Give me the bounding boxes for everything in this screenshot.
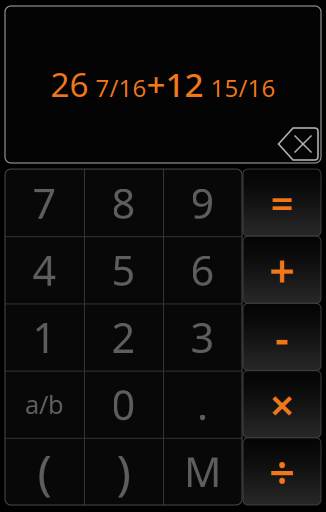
staticText: ) — [116, 439, 130, 503]
staticText: - — [275, 309, 289, 365]
button[interactable]: 3 — [163, 303, 242, 371]
button[interactable]: 2 — [84, 303, 163, 371]
button[interactable]: Delete — [277, 127, 319, 161]
button[interactable]: ) — [84, 438, 163, 505]
staticText: 4 — [32, 242, 56, 297]
button[interactable]: 4 — [5, 236, 84, 303]
button[interactable]: Plus — [243, 236, 321, 303]
staticText: +12 — [146, 62, 203, 106]
button[interactable]: a/b — [5, 371, 84, 438]
button[interactable]: . — [163, 371, 242, 438]
staticText: 8 — [111, 175, 135, 230]
staticText: ( — [37, 439, 51, 503]
button[interactable]: Multiply — [243, 371, 321, 438]
button[interactable]: 1 — [5, 303, 84, 371]
staticText: 7 — [32, 175, 56, 230]
staticText: 3 — [190, 310, 214, 364]
button[interactable]: 0 — [84, 371, 163, 438]
staticText: 15/16 — [210, 72, 275, 104]
button[interactable]: 6 — [163, 236, 242, 303]
staticText: 9 — [190, 175, 214, 230]
button[interactable]: ( — [5, 438, 84, 505]
button[interactable]: 5 — [84, 236, 163, 303]
staticText: . — [197, 377, 208, 432]
staticText: + — [269, 240, 295, 300]
staticText: 7/16 — [95, 72, 146, 104]
button[interactable]: M — [163, 438, 242, 505]
staticText: ÷ — [269, 441, 295, 501]
button[interactable]: 9 — [163, 169, 242, 236]
staticText: 1 — [32, 310, 56, 364]
staticText: 2 — [111, 310, 135, 364]
staticText: × — [269, 375, 294, 433]
button[interactable]: 8 — [84, 169, 163, 236]
button[interactable]: 7 — [5, 169, 84, 236]
staticText: 0 — [111, 377, 135, 432]
staticText: 5 — [111, 242, 135, 297]
staticText: 26 — [50, 62, 88, 106]
button[interactable]: Equals — [243, 169, 321, 236]
staticText: M — [184, 444, 221, 499]
staticText: a/b — [25, 387, 64, 421]
button[interactable]: Divide — [243, 438, 321, 505]
button[interactable]: Minus — [243, 303, 321, 371]
staticText: 6 — [190, 242, 214, 297]
staticText: = — [270, 176, 293, 229]
